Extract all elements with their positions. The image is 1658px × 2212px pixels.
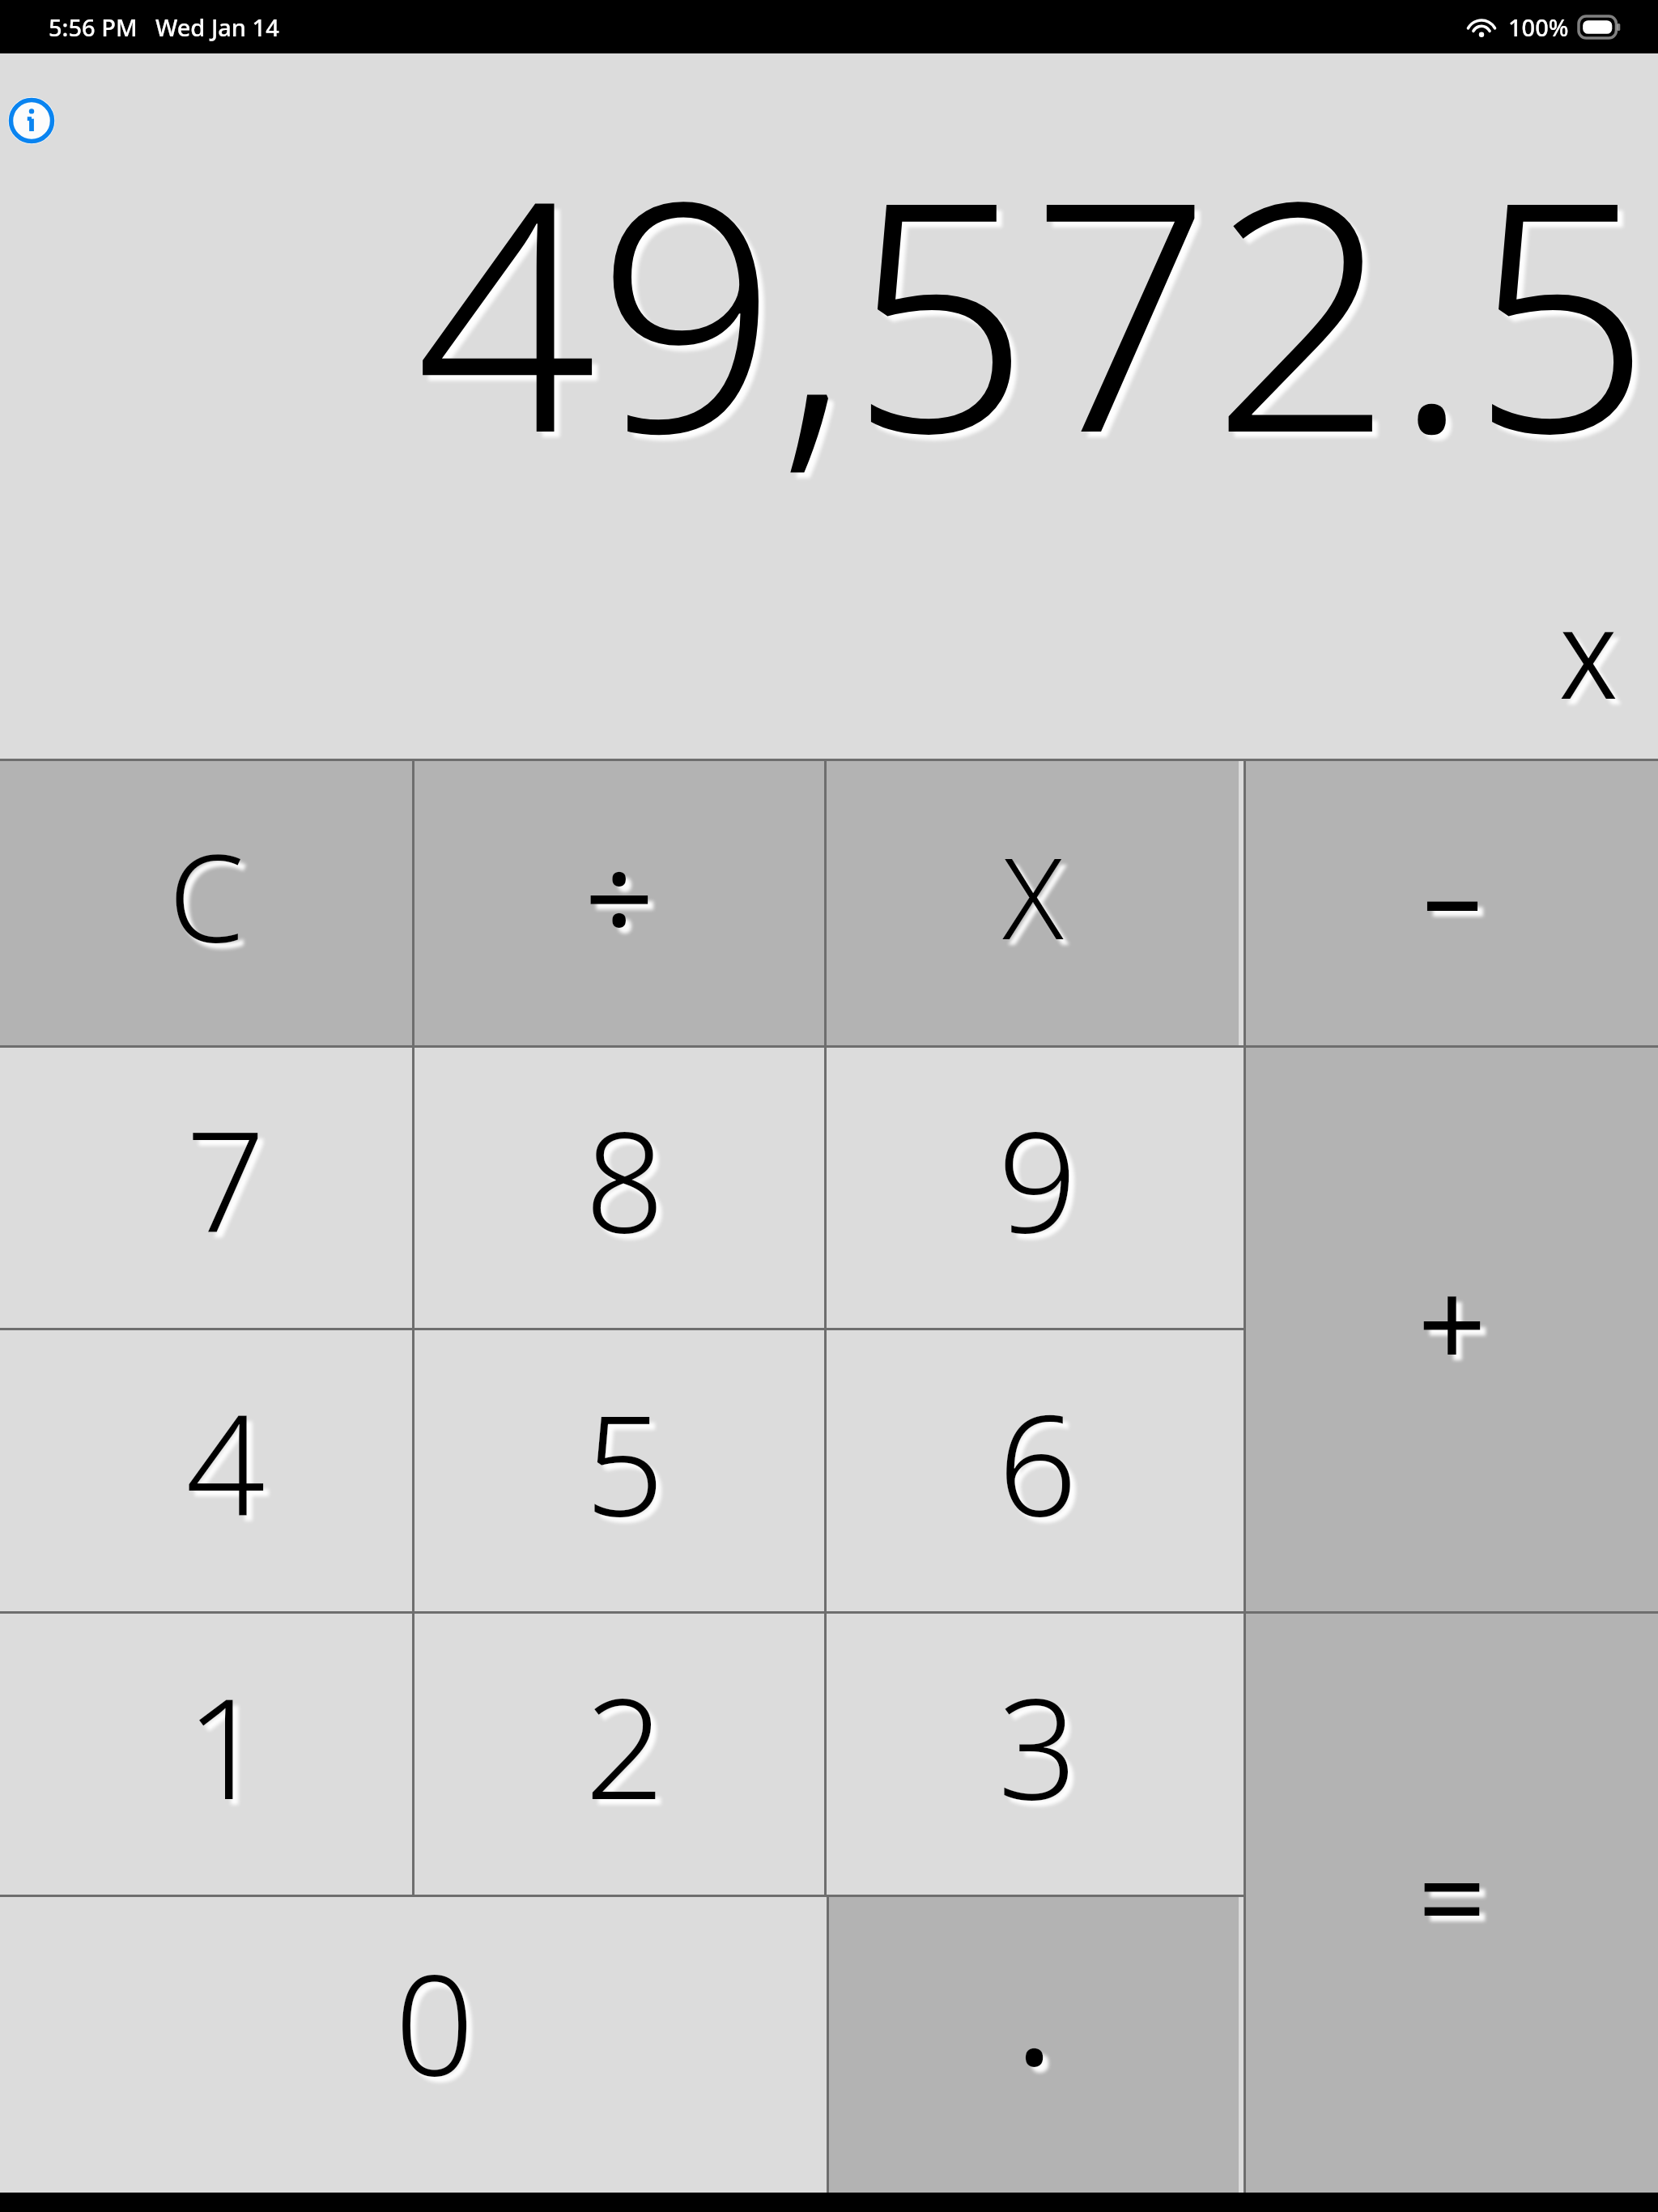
button[interactable]: Decimal point	[829, 1897, 1239, 2193]
staticText: 7	[185, 1083, 266, 1273]
button[interactable]: 7	[0, 1048, 412, 1328]
staticText: 49,572.5	[415, 92, 1652, 525]
button[interactable]: 9	[827, 1048, 1239, 1328]
staticText: =	[1418, 1814, 1486, 1977]
staticText: 3	[997, 1650, 1078, 1840]
staticText: 4	[185, 1367, 266, 1556]
staticText: 5:56 PM	[49, 11, 138, 43]
button[interactable]: Add	[1246, 1048, 1658, 1611]
staticText: 9	[997, 1083, 1078, 1273]
button[interactable]: 6	[827, 1330, 1239, 1611]
staticText: –	[1422, 810, 1482, 974]
button[interactable]: Divide	[414, 761, 824, 1045]
staticText: 0	[394, 1926, 474, 2116]
staticText: X	[1561, 598, 1616, 726]
staticText: 6	[997, 1367, 1078, 1556]
button[interactable]: 0	[0, 1897, 827, 2193]
staticText: 2	[585, 1650, 665, 1840]
staticText: .	[1015, 1916, 1053, 2106]
button[interactable]: 4	[0, 1330, 412, 1611]
button[interactable]: 2	[414, 1614, 824, 1895]
button[interactable]: Subtract	[1246, 761, 1658, 1045]
staticText: ÷	[585, 813, 654, 978]
button[interactable]: 3	[827, 1614, 1239, 1895]
button[interactable]: Equals	[1246, 1614, 1658, 2193]
button[interactable]: 8	[414, 1048, 824, 1328]
staticText: Wed Jan 14	[155, 11, 279, 43]
button[interactable]: 1	[0, 1614, 412, 1895]
staticText: C	[168, 813, 244, 978]
staticText: X	[1002, 819, 1064, 972]
staticText: 8	[585, 1083, 665, 1273]
button[interactable]: Clear	[0, 761, 412, 1045]
staticText: +	[1418, 1240, 1486, 1403]
staticText: 1	[185, 1650, 266, 1840]
button[interactable]: Info	[0, 84, 68, 157]
staticText: 100%	[1508, 11, 1569, 43]
staticText: 5	[585, 1367, 665, 1556]
button[interactable]: 5	[414, 1330, 824, 1611]
button[interactable]: Multiply	[827, 761, 1239, 1045]
